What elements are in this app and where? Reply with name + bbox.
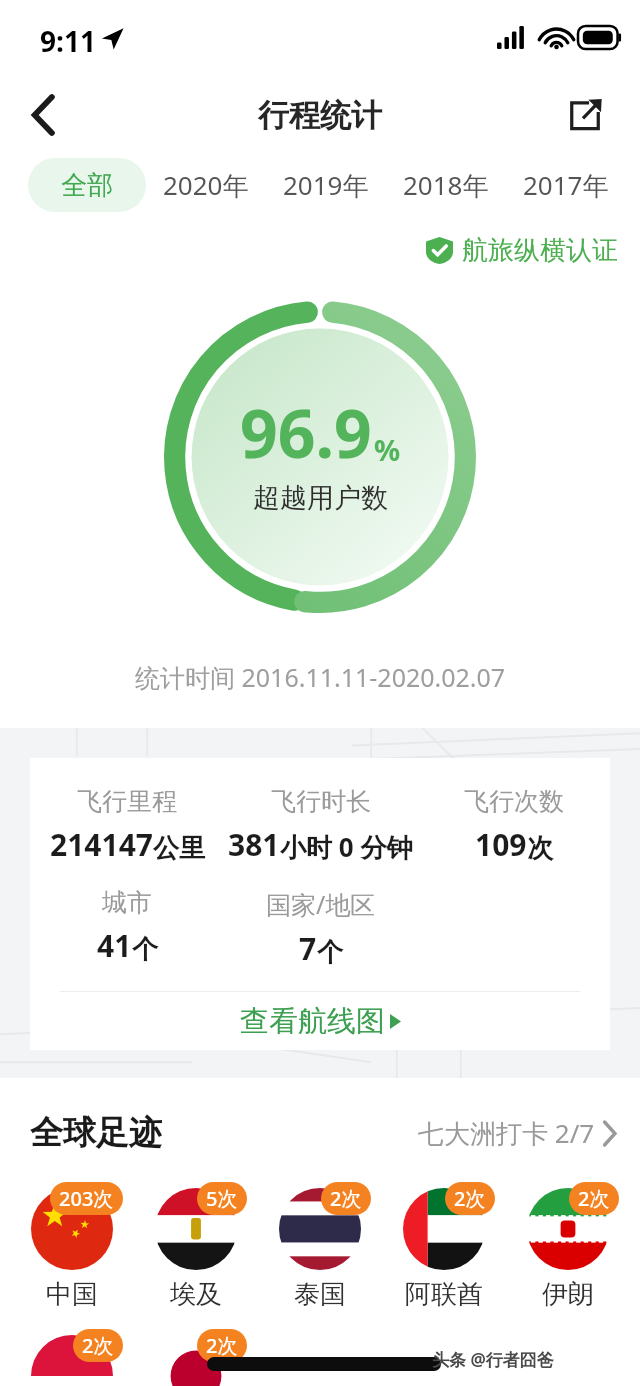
staticText: 小时 0 分钟 xyxy=(280,829,413,865)
staticText: 统计时间 2016.11.11-2020.02.07 xyxy=(135,660,506,694)
button[interactable]: Back xyxy=(10,82,76,148)
staticText: 飞行次数 xyxy=(464,786,564,817)
staticText: % xyxy=(374,430,401,469)
staticText: 次 xyxy=(527,832,553,865)
staticText: 个 xyxy=(132,933,158,966)
staticText: 全部 xyxy=(61,169,113,202)
staticText: 2019年 xyxy=(283,167,369,203)
staticText: 203次 xyxy=(59,1185,114,1212)
staticText: 个 xyxy=(317,936,343,969)
button[interactable]: Share xyxy=(552,82,618,148)
staticText: 七大洲打卡 2/7 xyxy=(418,1115,595,1151)
staticText: 超越用户数 xyxy=(253,481,388,515)
staticText: 飞行时长 xyxy=(271,786,371,817)
staticText: 96.9 xyxy=(240,387,372,477)
button[interactable]: 2次 xyxy=(258,1182,382,1311)
button[interactable]: 七大洲打卡 2/7 xyxy=(418,1115,616,1151)
staticText: 全球足迹 xyxy=(30,1112,162,1154)
button[interactable]: 2020年 xyxy=(163,158,249,212)
staticText: 2次 xyxy=(330,1185,362,1212)
button[interactable]: 2次 xyxy=(506,1182,630,1311)
button[interactable]: 2次 xyxy=(10,1329,134,1386)
button[interactable]: 查看航线图 xyxy=(30,992,610,1050)
button[interactable]: 2次 xyxy=(382,1182,506,1311)
staticText: 214147 xyxy=(50,824,153,865)
staticText: 城市 xyxy=(102,887,152,918)
staticText: 航旅纵横认证 xyxy=(462,234,618,267)
button[interactable]: 2019年 xyxy=(283,158,369,212)
staticText: 2次 xyxy=(578,1185,610,1212)
staticText: 泰国 xyxy=(294,1278,346,1311)
staticText: 109 xyxy=(475,824,527,865)
staticText: 5次 xyxy=(206,1185,238,1212)
staticText: 阿联酋 xyxy=(405,1278,483,1311)
staticText: 381 xyxy=(228,824,280,865)
button[interactable]: 2017年 xyxy=(523,158,609,212)
staticText: 41 xyxy=(97,925,132,966)
staticText: 7 xyxy=(299,928,317,969)
staticText: 头条 @行者囧爸 xyxy=(432,1348,554,1371)
staticText: 埃及 xyxy=(170,1278,222,1311)
staticText: 2次 xyxy=(206,1332,238,1359)
staticText: 2020年 xyxy=(163,167,249,203)
button[interactable]: 5次 xyxy=(134,1182,258,1311)
staticText: 2次 xyxy=(454,1185,486,1212)
button[interactable]: 全部 xyxy=(28,158,146,212)
staticText: 公里 xyxy=(153,832,205,865)
staticText: 2017年 xyxy=(523,167,609,203)
staticText: 查看航线图 xyxy=(240,1003,385,1040)
button[interactable]: 2次 xyxy=(134,1329,258,1386)
staticText: 2次 xyxy=(82,1332,114,1359)
button[interactable]: 203次 xyxy=(10,1182,134,1311)
staticText: 中国 xyxy=(46,1278,98,1311)
staticText: 伊朗 xyxy=(542,1278,594,1311)
staticText: 行程统计 xyxy=(258,96,382,135)
staticText: 9:11 xyxy=(40,22,96,60)
staticText: 2018年 xyxy=(403,167,489,203)
button[interactable]: 2018年 xyxy=(403,158,489,212)
staticText: 国家/地区 xyxy=(266,887,376,921)
staticText: 飞行里程 xyxy=(77,786,177,817)
